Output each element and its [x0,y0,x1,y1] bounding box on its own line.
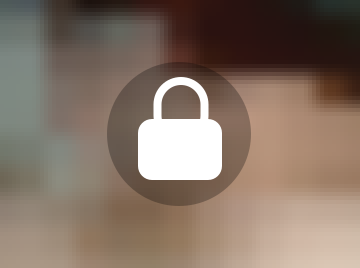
button[interactable]: Locked content [107,62,251,206]
